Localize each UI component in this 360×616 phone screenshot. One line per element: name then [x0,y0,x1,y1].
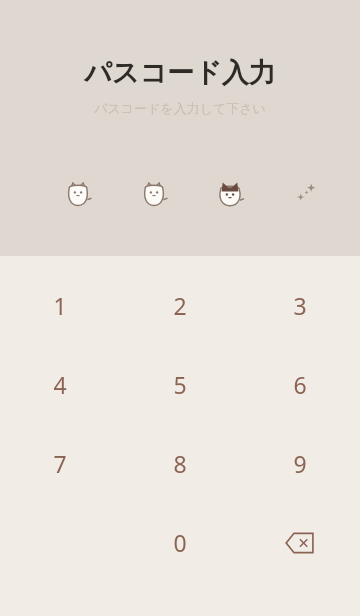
button[interactable]: 1 [0,266,120,345]
button[interactable]: 0 [120,503,240,582]
button[interactable]: 5 [120,345,240,424]
staticText: 8 [173,448,187,479]
button[interactable]: 8 [120,424,240,503]
staticText: 4 [53,369,67,400]
button[interactable]: 6 [240,345,360,424]
button[interactable]: 7 [0,424,120,503]
staticText: パスコードを入力して下さい [0,100,360,116]
staticText: 6 [293,369,307,400]
button[interactable]: Backspace [240,503,360,582]
staticText: パスコード入力 [0,56,360,90]
staticText: 2 [173,290,187,321]
staticText: 9 [293,448,307,479]
staticText: 3 [293,290,307,321]
staticText: 1 [53,290,67,321]
staticText: 0 [173,527,187,558]
staticText: 5 [173,369,187,400]
button[interactable]: 3 [240,266,360,345]
button[interactable]: 4 [0,345,120,424]
button[interactable]: 9 [240,424,360,503]
button[interactable]: 2 [120,266,240,345]
staticText: 7 [53,448,67,479]
